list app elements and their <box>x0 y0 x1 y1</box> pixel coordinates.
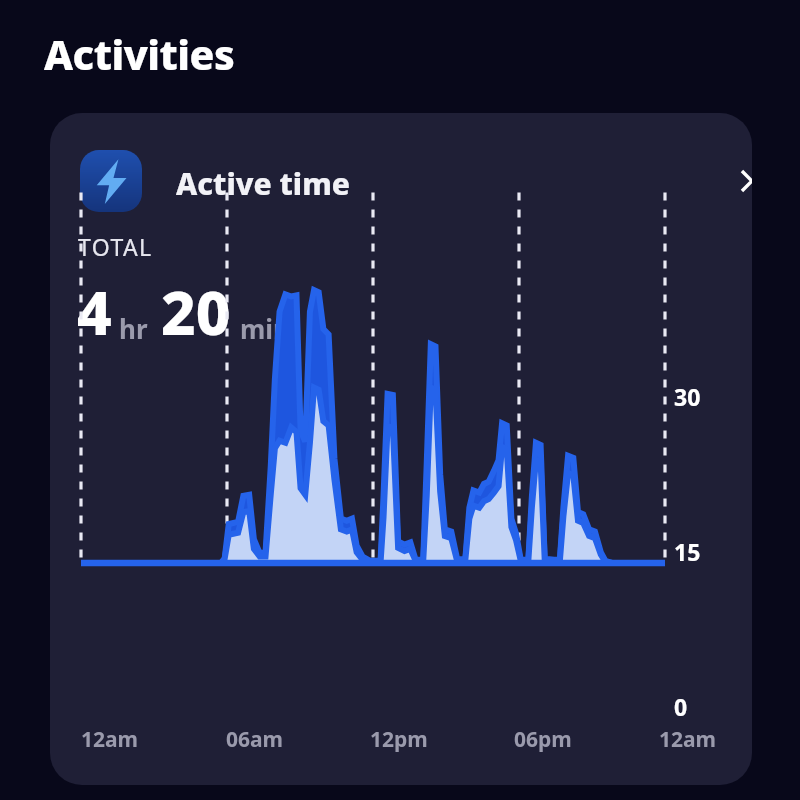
staticText: hr <box>119 311 148 346</box>
staticText: Active time <box>176 163 350 204</box>
staticText: 12am <box>659 725 717 754</box>
staticText: Activities <box>44 26 235 82</box>
staticText: TOTAL <box>78 231 153 262</box>
staticText: min <box>240 311 291 346</box>
staticText: 20 <box>161 271 231 353</box>
staticText: 15 <box>674 536 701 567</box>
staticText: 06am <box>226 725 284 754</box>
staticText: 12am <box>81 725 139 754</box>
button[interactable]: Open Active time details <box>718 151 752 211</box>
button[interactable]: Active time <box>50 113 752 785</box>
staticText: 4 <box>77 271 112 353</box>
staticText: 12pm <box>370 725 428 754</box>
staticText: 06pm <box>514 725 572 754</box>
staticText: 30 <box>674 381 701 412</box>
staticText: 0 <box>674 691 688 722</box>
